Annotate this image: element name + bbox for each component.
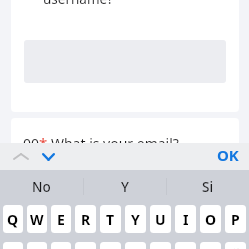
button[interactable]: L xyxy=(200,242,221,249)
staticText: Y xyxy=(121,178,129,196)
button[interactable]: R xyxy=(75,205,96,233)
staticText: Q xyxy=(7,210,19,229)
button[interactable]: T xyxy=(100,205,121,233)
button[interactable]: OK xyxy=(217,141,239,168)
staticText: T xyxy=(106,210,115,229)
staticText: username? xyxy=(43,0,114,8)
staticText: Y xyxy=(131,210,140,229)
button[interactable]: F xyxy=(75,242,96,249)
staticText: No xyxy=(32,178,51,196)
button[interactable]: Next field xyxy=(35,143,61,170)
staticText: P xyxy=(231,210,240,229)
button[interactable]: J xyxy=(150,242,171,249)
button[interactable]: Y xyxy=(84,170,166,203)
button[interactable]: E xyxy=(51,205,71,233)
staticText: W xyxy=(30,210,44,229)
button[interactable]: I xyxy=(175,205,196,233)
staticText: OK xyxy=(217,145,239,165)
button[interactable]: K xyxy=(175,242,196,249)
button[interactable]: S xyxy=(27,242,47,249)
button[interactable]: P xyxy=(225,205,246,233)
staticText: Si xyxy=(202,178,214,196)
button[interactable]: G xyxy=(100,242,121,249)
button[interactable]: No xyxy=(0,170,83,203)
button[interactable]: A xyxy=(3,242,23,249)
staticText: I xyxy=(183,210,189,229)
button[interactable]: Q xyxy=(3,205,23,233)
button[interactable]: W xyxy=(27,205,47,233)
button[interactable]: Previous field xyxy=(8,143,34,170)
staticText: E xyxy=(57,210,65,229)
staticText: O xyxy=(205,210,217,229)
button[interactable]: Ñ xyxy=(225,242,246,249)
button[interactable]: Y xyxy=(125,205,146,233)
staticText: U xyxy=(155,210,166,229)
staticText: 00* What is your email? xyxy=(23,133,179,144)
button[interactable]: U xyxy=(150,205,171,233)
button[interactable]: D xyxy=(51,242,71,249)
button[interactable]: H xyxy=(125,242,146,249)
staticText: R xyxy=(81,210,91,229)
button[interactable]: O xyxy=(200,205,221,233)
button[interactable]: Si xyxy=(167,170,249,203)
